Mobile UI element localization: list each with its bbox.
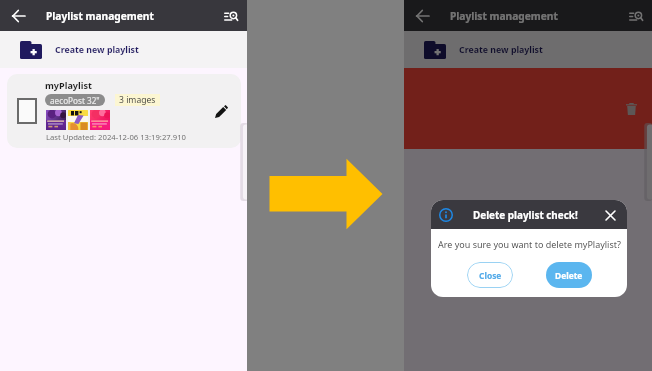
staticText: Delete playlist check! <box>473 208 578 221</box>
staticText: Are you sure you want to delete myPlayli… <box>438 238 621 250</box>
button[interactable]: Search playlists <box>623 3 649 29</box>
button[interactable]: Select playlist <box>17 98 37 124</box>
button[interactable]: Edit playlist <box>208 98 234 124</box>
button[interactable]: Create new playlist <box>404 31 652 68</box>
button[interactable]: Create new playlist <box>0 31 247 68</box>
staticText: Create new playlist <box>55 44 139 56</box>
staticText: myPlaylist <box>45 79 92 91</box>
button[interactable]: Delete <box>546 262 592 288</box>
staticText: Playlist management <box>46 9 154 23</box>
button[interactable]: Close dialog <box>602 207 618 223</box>
button[interactable]: Back <box>3 1 33 31</box>
button[interactable]: Select playlist <box>7 74 241 148</box>
button[interactable]: Search playlists <box>218 3 244 29</box>
button[interactable]: Close <box>467 262 513 288</box>
staticText: Close <box>479 270 502 281</box>
staticText: Last Updated: 2024-12-06 13:19:27.910 <box>46 132 186 142</box>
button[interactable]: Delete <box>621 99 641 119</box>
staticText: 3 images <box>119 94 156 106</box>
staticText: aecoPost 32" <box>50 95 100 106</box>
staticText: Create new playlist <box>459 44 543 56</box>
staticText: Playlist management <box>450 9 558 23</box>
staticText: Delete <box>555 270 583 281</box>
button[interactable]: Back <box>407 1 437 31</box>
